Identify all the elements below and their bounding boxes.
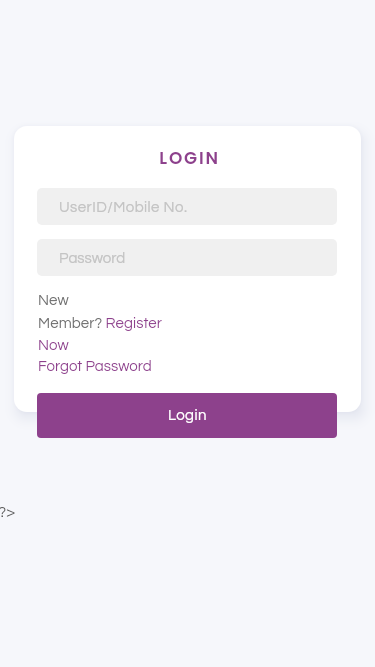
- staticText: LOGIN: [16, 146, 363, 170]
- button[interactable]: UserID/Mobile No.: [37, 188, 337, 225]
- staticText: UserID/Mobile No.: [59, 200, 188, 215]
- button[interactable]: New Member? Register Now: [38, 293, 163, 353]
- button[interactable]: Forgot Password: [38, 359, 152, 374]
- staticText: Login: [168, 408, 207, 423]
- staticText: New Member? Register Now: [38, 293, 163, 353]
- staticText: ?>: [0, 504, 15, 520]
- button[interactable]: Login: [37, 393, 337, 438]
- button[interactable]: Password: [37, 239, 337, 276]
- staticText: Forgot Password: [38, 359, 152, 374]
- staticText: Password: [59, 251, 126, 266]
